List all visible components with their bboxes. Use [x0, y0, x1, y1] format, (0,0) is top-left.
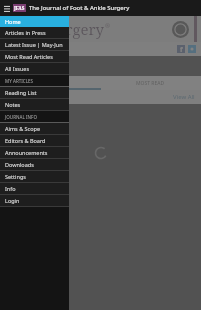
staticText: f	[180, 45, 183, 53]
staticText: Articles in Press	[5, 29, 46, 36]
button[interactable]: Downloads	[0, 159, 69, 170]
staticText: JOURNAL INFO	[5, 114, 37, 120]
staticText: The Journal of Foot & Ankle Surgery	[29, 4, 130, 12]
button[interactable]: Info	[0, 183, 69, 194]
button[interactable]: Settings	[0, 171, 69, 182]
button[interactable]: Home	[0, 16, 69, 27]
staticText: MY ARTICLES	[5, 78, 34, 84]
staticText: MOST READ	[136, 80, 165, 87]
button[interactable]: Reading List	[0, 87, 69, 98]
staticText: Most Read Articles	[5, 53, 53, 60]
button[interactable]: Announcements	[0, 147, 69, 158]
button[interactable]: LATEST	[0, 76, 100, 90]
staticText: JFAS	[14, 5, 25, 11]
button[interactable]: View All	[173, 93, 195, 101]
button[interactable]: Editors & Board	[0, 135, 69, 146]
staticText: ®	[105, 22, 111, 30]
staticText: Aims & Scope	[5, 125, 41, 132]
staticText: Downloads	[5, 161, 34, 168]
staticText: AnkleSurgery	[6, 19, 105, 39]
staticText: Login	[5, 197, 20, 204]
button[interactable]: Twitter	[188, 45, 196, 53]
staticText: View All	[173, 93, 195, 101]
staticText: Home	[5, 18, 21, 25]
button[interactable]: Aims & Scope	[0, 123, 69, 134]
staticText: Notes	[5, 101, 21, 108]
button[interactable]: All Issues	[0, 63, 69, 74]
button[interactable]: Articles in Press	[0, 27, 69, 38]
staticText: Editors & Board	[5, 137, 46, 144]
staticText: Info	[5, 185, 16, 192]
button[interactable]: MOST READ	[100, 76, 201, 90]
staticText: All Issues	[5, 65, 30, 72]
button[interactable]: Notes	[0, 99, 69, 110]
button[interactable]: Most Read Articles	[0, 51, 69, 62]
staticText: Latest Issue | May-Jun 2016	[5, 41, 69, 48]
button[interactable]: Login	[0, 195, 69, 206]
staticText: Announcements	[5, 149, 48, 156]
staticText: Reading List	[5, 89, 37, 96]
button[interactable]: Open navigation drawer	[0, 2, 13, 15]
button[interactable]: Latest Issue | May-Jun 2016	[0, 39, 69, 50]
staticText: LATEST	[42, 80, 59, 87]
button[interactable]: Facebook	[177, 45, 185, 53]
staticText: Settings	[5, 173, 26, 180]
